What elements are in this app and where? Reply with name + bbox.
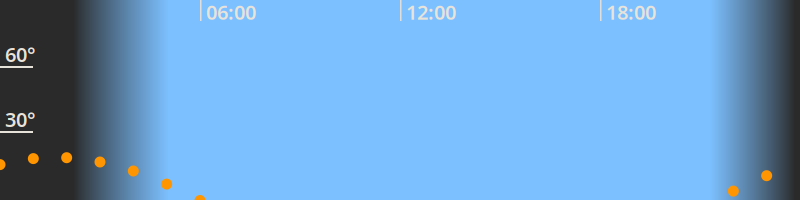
- staticText: 60°: [5, 41, 36, 67]
- staticText: 06:00: [206, 0, 256, 25]
- staticText: 18:00: [606, 0, 656, 25]
- staticText: 30°: [5, 106, 36, 132]
- staticText: 12:00: [406, 0, 456, 25]
